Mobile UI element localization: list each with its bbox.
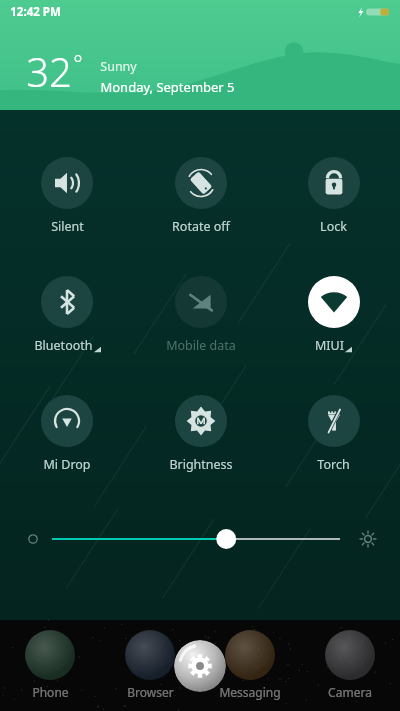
button[interactable]: Bluetooth [0, 274, 134, 356]
staticText: Sunny [100, 58, 137, 75]
button[interactable]: Lock [267, 155, 400, 237]
button[interactable]: Messaging [200, 630, 300, 700]
button[interactable]: Brightness [134, 393, 267, 475]
button[interactable]: Settings [174, 640, 226, 692]
button[interactable]: Mi Drop [0, 393, 134, 475]
staticText: Brightness [169, 456, 233, 473]
staticText: Torch [317, 456, 350, 473]
staticText: Phone [32, 684, 69, 700]
button[interactable]: Torch [267, 393, 400, 475]
button[interactable]: Brightness [0, 517, 400, 561]
button[interactable]: Browser [100, 630, 200, 700]
staticText: Camera [328, 684, 372, 700]
staticText: MIUI [315, 337, 344, 354]
staticText: Silent [51, 218, 84, 235]
staticText: Rotate off [172, 218, 230, 235]
button[interactable]: Phone [0, 630, 100, 700]
button[interactable]: Camera [300, 630, 400, 700]
button[interactable]: Silent [0, 155, 134, 237]
staticText: Bluetooth [34, 337, 93, 354]
staticText: Lock [320, 218, 347, 235]
staticText: 12:42 PM [10, 4, 61, 20]
button[interactable]: MIUI [267, 274, 400, 356]
button[interactable]: Rotate off [134, 155, 267, 237]
button[interactable]: Mobile data [134, 274, 267, 356]
staticText: 32 [26, 44, 72, 98]
staticText: Browser [127, 684, 174, 700]
staticText: Monday, September 5 [100, 78, 235, 96]
staticText: Mobile data [166, 337, 236, 354]
staticText: Messaging [219, 684, 281, 700]
staticText: ° [73, 47, 83, 77]
staticText: Mi Drop [43, 456, 91, 473]
